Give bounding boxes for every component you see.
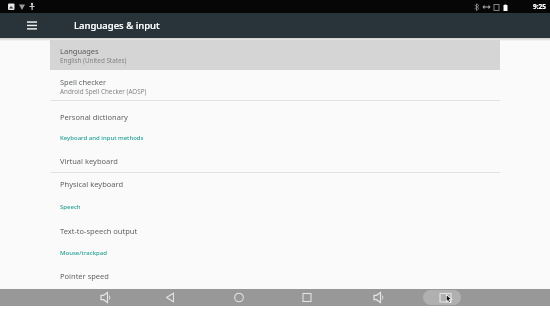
button[interactable] (86, 289, 124, 306)
staticText: Pointer speed (60, 271, 109, 281)
staticText: Languages (60, 46, 99, 56)
staticText: Virtual keyboard (60, 156, 118, 166)
staticText: Keyboard and input methods (60, 134, 144, 142)
button[interactable]: Text-to-speech output (50, 219, 500, 243)
staticText: Spell checker (60, 77, 107, 87)
staticText: Text-to-speech output (60, 226, 138, 236)
button[interactable]: Pointer speed (50, 263, 500, 289)
button[interactable]: Personal dictionary (50, 101, 500, 132)
button[interactable] (288, 289, 326, 306)
button[interactable]: Languages (50, 40, 500, 70)
button[interactable] (151, 289, 189, 306)
button[interactable] (422, 289, 460, 306)
staticText: Mouse/trackpad (60, 249, 107, 257)
button[interactable] (359, 289, 397, 306)
staticText: English (United States) (60, 56, 127, 65)
staticText: Android Spell Checker (AOSP) (60, 87, 147, 96)
staticText: Personal dictionary (60, 112, 128, 122)
button[interactable]: Physical keyboard (50, 173, 500, 195)
staticText: Languages & input (74, 19, 160, 32)
button[interactable] (220, 289, 258, 306)
staticText: Speech (60, 203, 81, 211)
button[interactable]: Spell checker (50, 70, 500, 100)
button[interactable]: Virtual keyboard (50, 153, 500, 172)
staticText: Physical keyboard (60, 179, 124, 189)
staticText: 9:25 (533, 2, 546, 11)
